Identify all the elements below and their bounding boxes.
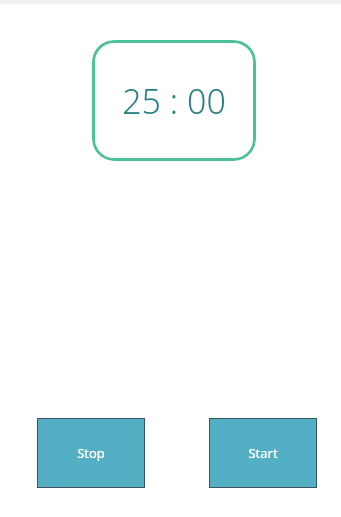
button[interactable]: Stop (37, 418, 145, 488)
button[interactable]: Start (209, 418, 317, 488)
staticText: 25 : 00 (122, 78, 226, 124)
staticText: Start (248, 444, 278, 462)
button[interactable]: 25 : 00 (92, 40, 256, 161)
staticText: Stop (77, 444, 105, 462)
